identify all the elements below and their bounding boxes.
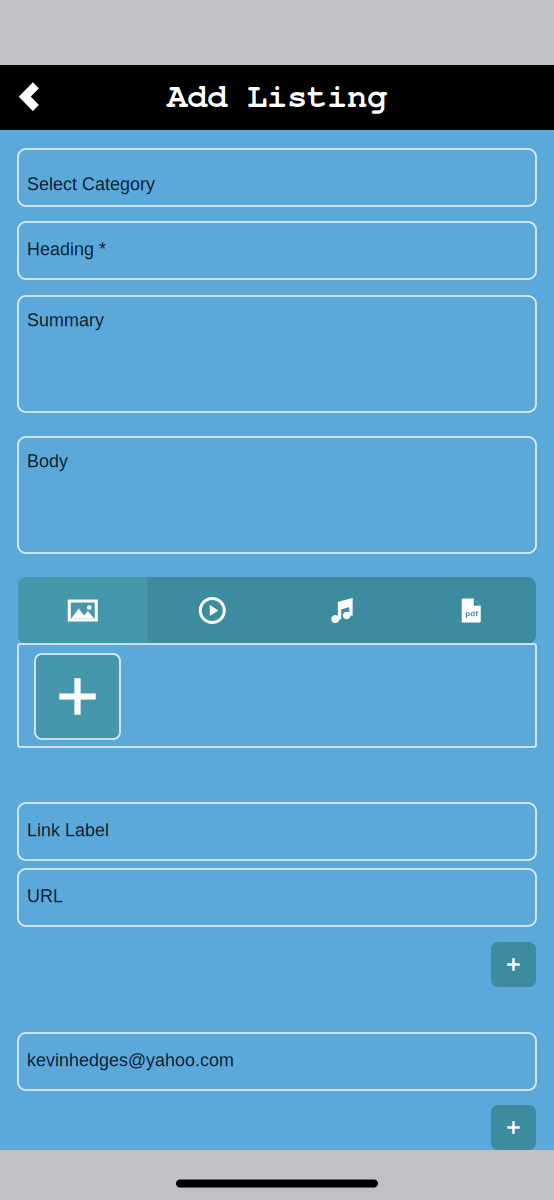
button[interactable]: Add email [491,1105,536,1150]
button[interactable]: Back [0,65,58,130]
button[interactable]: Audio [277,577,406,644]
button[interactable]: Heading * [18,222,536,279]
button[interactable]: Select Category [18,149,536,206]
staticText: Heading * [27,239,106,259]
staticText: Select Category [27,174,155,194]
staticText: pdf [465,609,478,618]
staticText: Summary [27,310,104,330]
button[interactable]: URL [18,869,536,926]
button[interactable]: Photos [18,577,147,644]
staticText: Add Listing [167,71,387,116]
button[interactable]: Add link [491,942,536,987]
staticText: kevinhedges@yahoo.com [27,1050,234,1070]
button[interactable]: Documents [406,577,536,644]
button[interactable]: Link Label [18,803,536,860]
button[interactable]: Body [18,437,536,553]
button[interactable]: Summary [18,296,536,412]
button[interactable]: Add media [35,654,120,739]
button[interactable]: Videos [147,577,277,644]
button[interactable]: kevinhedges@yahoo.com [18,1033,536,1090]
staticText: URL [27,886,63,906]
staticText: Body [27,451,68,471]
staticText: Link Label [27,820,109,840]
